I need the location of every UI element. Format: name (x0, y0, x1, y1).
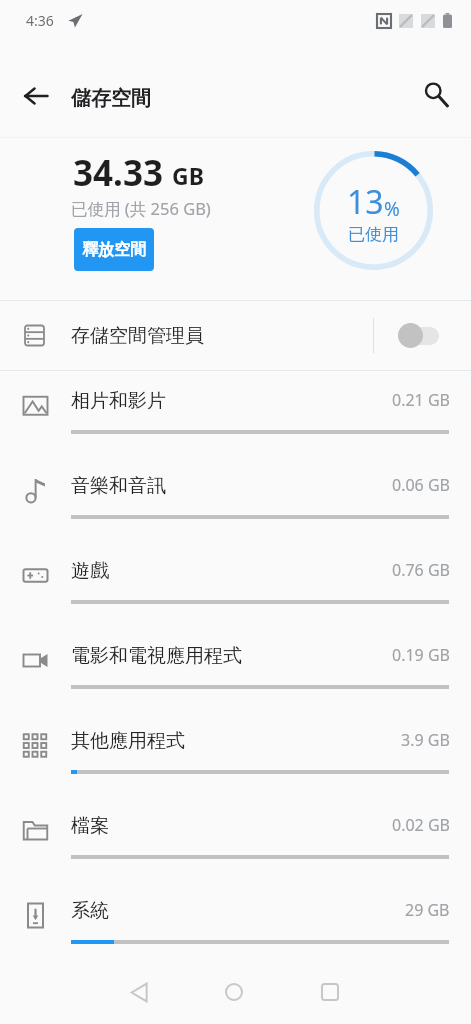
staticText: 0.21 GB (392, 389, 450, 411)
button[interactable]: 遊戲 (0, 541, 471, 626)
staticText: 儲存空間 (71, 86, 151, 111)
staticText: % (384, 196, 400, 222)
staticText: 已使用 (348, 224, 399, 245)
button[interactable]: 相片和影片 (0, 371, 471, 456)
staticText: 13 (347, 180, 384, 224)
staticText: 音樂和音訊 (71, 474, 166, 498)
staticText: 相片和影片 (71, 389, 166, 413)
button[interactable]: 系統 (0, 881, 471, 966)
staticText: 0.06 GB (392, 474, 450, 496)
staticText: 其他應用程式 (71, 729, 185, 753)
staticText: 0.02 GB (392, 814, 450, 836)
staticText: 存儲空間管理員 (71, 324, 204, 348)
staticText: 系統 (71, 899, 109, 923)
staticText: 檔案 (71, 814, 109, 838)
staticText: 0.19 GB (392, 644, 450, 666)
button[interactable]: 檔案 (0, 796, 471, 881)
staticText: 已使用 (共 256 GB) (71, 197, 211, 220)
button[interactable]: 釋放空間 (74, 228, 154, 271)
button[interactable]: Home (210, 968, 258, 1016)
button[interactable]: 電影和電視應用程式 (0, 626, 471, 711)
button[interactable]: Back (115, 968, 163, 1016)
button[interactable]: Search (412, 71, 460, 119)
button[interactable]: Storage manager toggle (374, 301, 471, 370)
staticText: 電影和電視應用程式 (71, 644, 242, 668)
staticText: GB (172, 160, 204, 191)
button[interactable]: 存儲空間管理員 (0, 301, 471, 370)
button[interactable]: 其他應用程式 (0, 711, 471, 796)
staticText: 釋放空間 (82, 240, 146, 260)
staticText: 4:36 (26, 11, 54, 30)
button[interactable]: Back (12, 72, 60, 120)
staticText: 29 GB (405, 899, 450, 921)
button[interactable]: Recents (306, 968, 354, 1016)
staticText: 34.33 (73, 149, 163, 197)
button[interactable]: 音樂和音訊 (0, 456, 471, 541)
staticText: 3.9 GB (401, 729, 450, 751)
staticText: 0.76 GB (392, 559, 450, 581)
staticText: 遊戲 (71, 559, 109, 583)
